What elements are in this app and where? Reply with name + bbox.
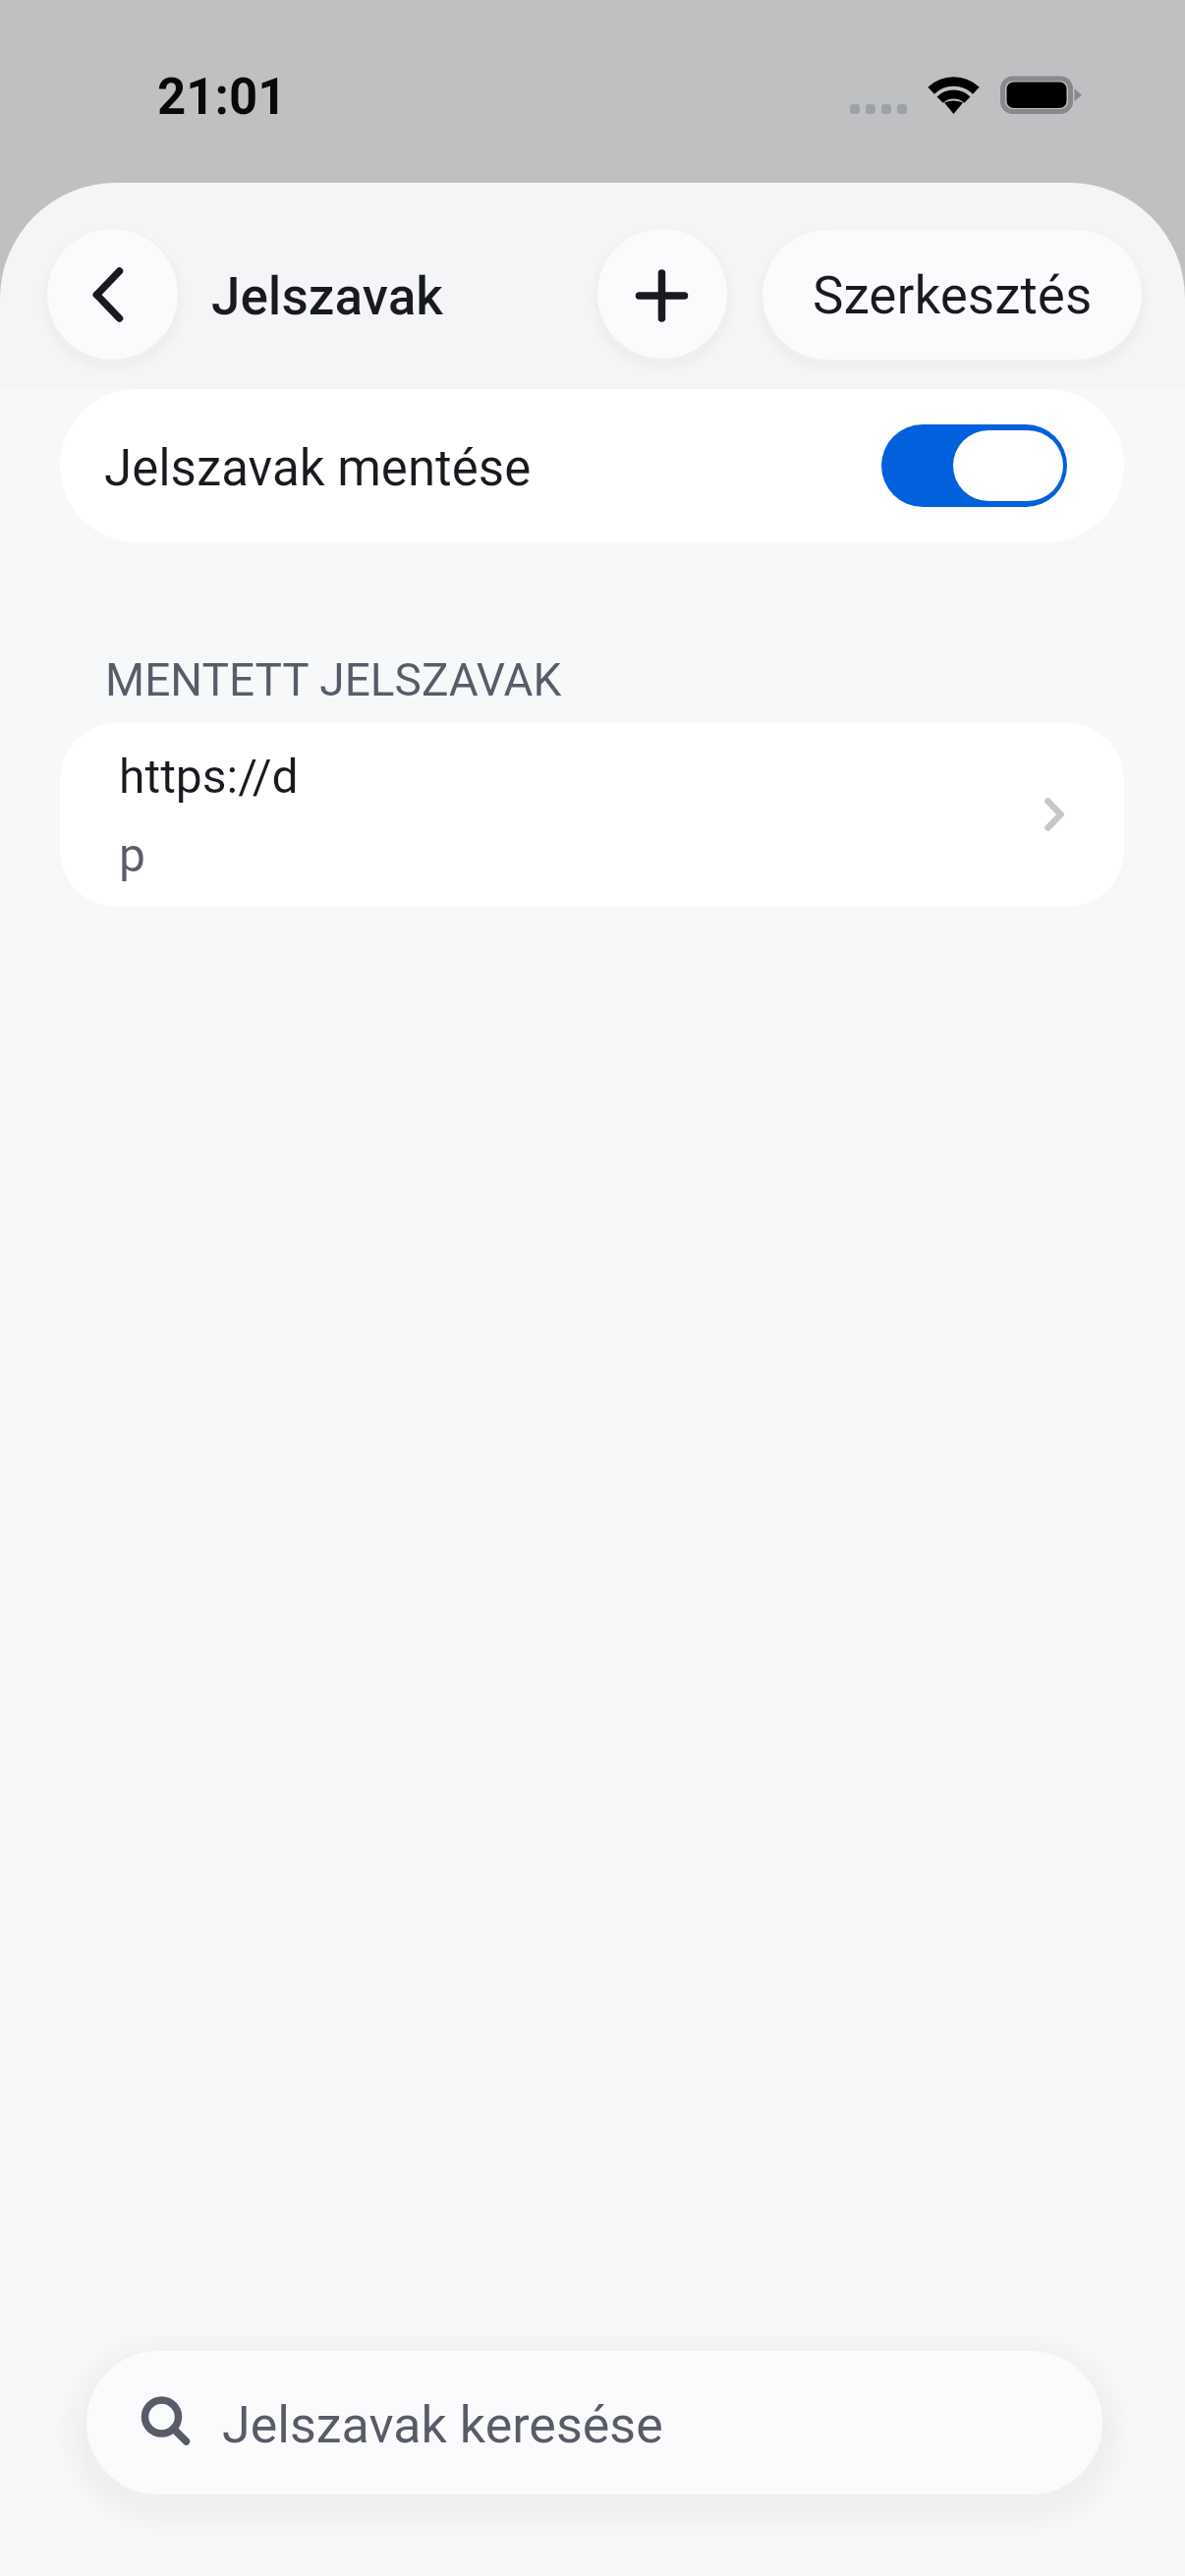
- staticText: Jelszavak: [211, 266, 444, 327]
- button[interactable]: Add password: [597, 229, 727, 359]
- staticText: Szerkesztés: [813, 265, 1093, 326]
- staticText: Jelszavak keresése: [222, 2395, 663, 2455]
- staticText: 21:01: [157, 68, 287, 127]
- button[interactable]: Save passwords toggle: [881, 424, 1067, 507]
- button[interactable]: https://d: [60, 723, 1124, 907]
- button[interactable]: Szerkesztés: [762, 230, 1142, 360]
- button[interactable]: Back: [47, 229, 178, 360]
- button[interactable]: Jelszavak keresése: [86, 2351, 1102, 2494]
- button[interactable]: Jelszavak mentése: [60, 389, 1124, 542]
- staticText: Jelszavak mentése: [104, 439, 532, 498]
- staticText: https://d: [119, 749, 299, 804]
- staticText: p: [119, 827, 145, 882]
- staticText: MENTETT JELSZAVAK: [105, 653, 562, 706]
